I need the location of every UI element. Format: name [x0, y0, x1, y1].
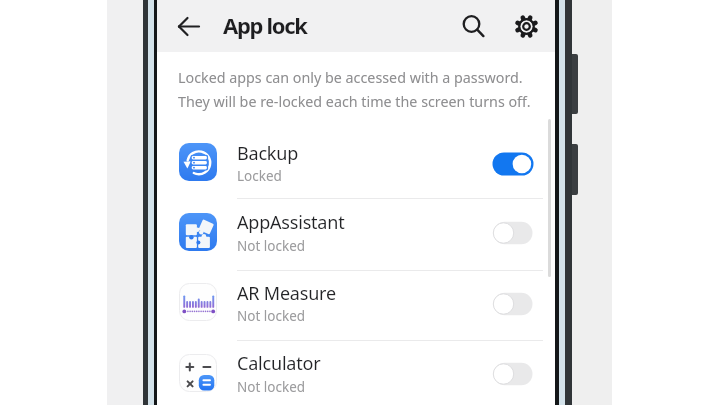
staticText: Locked [237, 167, 282, 185]
staticText: Locked apps can only be accessed with a … [178, 68, 531, 111]
button[interactable] [492, 221, 534, 245]
staticText: Not locked [237, 237, 306, 255]
staticText: Calculator [237, 351, 321, 376]
button[interactable] [511, 10, 543, 44]
button[interactable] [492, 362, 534, 386]
button[interactable] [457, 8, 487, 44]
staticText: App lock [223, 10, 307, 40]
staticText: Backup [237, 141, 299, 166]
staticText: AR Measure [237, 281, 336, 306]
button[interactable] [157, 133, 555, 193]
button[interactable] [492, 152, 534, 176]
button[interactable] [492, 292, 534, 316]
staticText: AppAssistant [237, 210, 345, 235]
staticText: Not locked [237, 307, 306, 325]
button[interactable] [157, 344, 555, 404]
button[interactable] [157, 203, 555, 263]
button[interactable] [169, 8, 209, 46]
button[interactable] [157, 273, 555, 333]
staticText: Not locked [237, 378, 306, 396]
